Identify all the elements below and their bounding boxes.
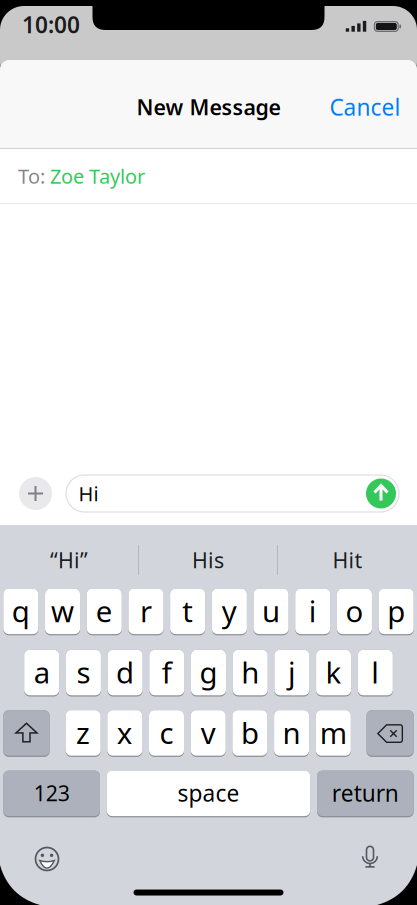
button[interactable]: r [128, 589, 163, 635]
staticText: g [199, 653, 217, 692]
staticText: space [177, 778, 239, 808]
button[interactable]: To: [18, 149, 417, 203]
staticText: 10:00 [22, 9, 80, 39]
button[interactable] [361, 846, 379, 870]
staticText: i [309, 591, 317, 630]
staticText: Cancel [329, 92, 400, 122]
staticText: “Hi” [50, 546, 88, 574]
button[interactable]: j [274, 650, 309, 696]
staticText: Hit [332, 546, 362, 574]
staticText: To: [18, 163, 50, 189]
button[interactable]: t [170, 589, 205, 635]
button[interactable]: g [191, 650, 226, 696]
staticText: q [12, 591, 30, 630]
button[interactable]: 123 [3, 771, 100, 817]
button[interactable]: l [358, 650, 393, 696]
button[interactable]: Cancel [325, 87, 405, 127]
button[interactable]: His [139, 536, 277, 584]
button[interactable]: n [274, 710, 309, 757]
button[interactable]: k [316, 650, 351, 696]
staticText: v [201, 713, 216, 752]
staticText: 123 [34, 779, 70, 807]
button[interactable] [366, 710, 414, 757]
staticText: l [371, 653, 379, 692]
button[interactable]: p [379, 589, 414, 635]
staticText: z [76, 713, 90, 752]
button[interactable]: space [107, 771, 310, 817]
button[interactable]: Hi [66, 475, 399, 512]
button[interactable]: Hit [278, 536, 417, 584]
staticText: y [222, 591, 237, 630]
button[interactable] [34, 846, 60, 872]
staticText: s [76, 653, 90, 692]
button[interactable]: s [66, 650, 101, 696]
button[interactable]: y [212, 589, 247, 635]
staticText: New Message [136, 93, 280, 121]
staticText: c [159, 713, 173, 752]
button[interactable]: v [191, 710, 226, 757]
staticText: n [283, 713, 301, 752]
button[interactable]: w [45, 589, 80, 635]
button[interactable]: b [232, 710, 267, 757]
staticText: Hi [78, 480, 98, 507]
button[interactable]: o [337, 589, 372, 635]
button[interactable]: a [24, 650, 59, 696]
staticText: f [162, 653, 172, 692]
staticText: u [262, 591, 280, 630]
staticText: h [241, 653, 259, 692]
staticText: m [320, 713, 347, 752]
button[interactable]: m [316, 710, 351, 757]
button[interactable]: c [149, 710, 184, 757]
button[interactable]: d [108, 650, 143, 696]
button[interactable]: return [317, 771, 414, 817]
button[interactable] [19, 477, 52, 510]
button[interactable]: q [3, 589, 38, 635]
staticText: d [116, 653, 134, 692]
staticText: t [182, 591, 193, 630]
staticText: a [34, 653, 50, 692]
staticText: p [387, 591, 405, 630]
staticText: x [117, 713, 133, 752]
staticText: His [192, 546, 224, 574]
button[interactable]: f [149, 650, 184, 696]
button[interactable]: x [107, 710, 142, 757]
staticText: Zoe Taylor [50, 163, 145, 189]
button[interactable]: h [233, 650, 268, 696]
button[interactable]: i [295, 589, 330, 635]
staticText: k [326, 653, 342, 692]
staticText: e [96, 591, 113, 630]
staticText: w [51, 591, 74, 630]
button[interactable]: “Hi” [0, 536, 138, 584]
staticText: return [332, 778, 399, 808]
staticText: o [345, 591, 363, 630]
button[interactable] [366, 478, 396, 508]
staticText: r [140, 591, 152, 630]
button[interactable]: u [253, 589, 288, 635]
staticText: b [241, 713, 259, 752]
button[interactable] [3, 710, 50, 757]
button[interactable]: z [66, 710, 101, 757]
button[interactable]: e [87, 589, 122, 635]
staticText: j [288, 653, 296, 692]
